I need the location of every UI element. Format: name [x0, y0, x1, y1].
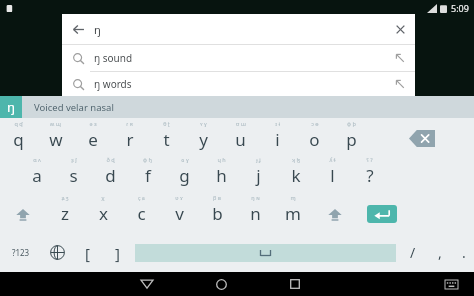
staticText: u: [235, 128, 246, 151]
staticText: y: [199, 128, 208, 151]
staticText: ə ɜ: [89, 120, 97, 127]
staticText: ]: [115, 243, 120, 263]
button[interactable]: ɪ ɨ: [259, 120, 296, 156]
button[interactable]: Switch keyboard: [434, 272, 468, 296]
button[interactable]: Space: [135, 244, 396, 262]
staticText: l: [330, 164, 335, 187]
button[interactable]: ɑ ʌ: [18, 156, 55, 194]
staticText: ɸ ɧ: [143, 156, 152, 163]
button[interactable]: ɸ ɧ: [129, 156, 166, 194]
staticText: o: [309, 128, 320, 151]
button[interactable]: Back: [130, 272, 164, 296]
staticText: ŋ ɴ: [251, 194, 260, 201]
staticText: q: [13, 128, 24, 151]
staticText: s: [69, 164, 78, 187]
button[interactable]: Shift: [312, 194, 358, 233]
button[interactable]: ʎ ɬ: [314, 156, 351, 194]
button[interactable]: ʕ ʔ: [351, 156, 388, 194]
staticText: ʊ ɯ: [236, 120, 246, 127]
button[interactable]: ð ɖ: [92, 156, 129, 194]
button[interactable]: ɔ ɵ: [296, 120, 333, 156]
button[interactable]: ɱ: [274, 194, 312, 233]
button[interactable]: Change language: [42, 233, 72, 272]
button[interactable]: Clear: [385, 14, 415, 44]
staticText: f: [145, 164, 151, 187]
button[interactable]: ]: [102, 233, 132, 272]
button[interactable]: Backspace: [370, 120, 474, 156]
staticText: 5:09: [451, 2, 469, 14]
staticText: ɸ þ: [347, 120, 356, 127]
staticText: ʑ ʒ: [61, 194, 69, 201]
staticText: ?: [366, 164, 374, 187]
staticText: ç ɕ: [138, 194, 145, 201]
staticText: ʎ ɬ: [329, 156, 336, 163]
button[interactable]: Recent apps: [278, 272, 312, 296]
button[interactable]: χ: [84, 194, 122, 233]
button[interactable]: ə ɜ: [74, 120, 111, 156]
staticText: ʕ ʔ: [366, 156, 373, 163]
button[interactable]: ?123: [0, 233, 42, 272]
staticText: ŋ words: [94, 77, 385, 91]
staticText: ʏ ɣ: [200, 120, 207, 127]
staticText: g: [179, 164, 190, 187]
button[interactable]: ç ɕ: [122, 194, 160, 233]
button[interactable]: ʂ ʃ: [55, 156, 92, 194]
staticText: ɟ ʝ: [256, 156, 261, 163]
button[interactable]: ,: [427, 233, 453, 272]
button[interactable]: ɋ ʠ: [0, 120, 37, 156]
staticText: d: [105, 164, 116, 187]
button[interactable]: ɾ ʀ: [111, 120, 148, 156]
staticText: ŋ: [7, 98, 16, 116]
button[interactable]: Back: [62, 14, 94, 44]
button[interactable]: ʑ ʒ: [46, 194, 84, 233]
button[interactable]: ʏ ɣ: [185, 120, 222, 156]
staticText: ɾ ʀ: [126, 120, 133, 127]
button[interactable]: ŋ words: [62, 72, 415, 96]
staticText: a: [32, 164, 42, 187]
staticText: z: [61, 202, 69, 225]
button[interactable]: Home: [204, 272, 238, 296]
staticText: v: [175, 202, 184, 225]
button[interactable]: [: [72, 233, 102, 272]
staticText: ɢ ɣ: [181, 156, 189, 163]
button[interactable]: ŋ ɴ: [236, 194, 274, 233]
button[interactable]: ɢ ɣ: [166, 156, 203, 194]
staticText: i: [275, 128, 280, 151]
button[interactable]: /: [399, 233, 427, 272]
button[interactable]: ɥ ɦ: [203, 156, 240, 194]
staticText: ʋ ɤ: [175, 194, 183, 201]
button[interactable]: β ʙ: [198, 194, 236, 233]
staticText: h: [216, 164, 227, 187]
staticText: ɑ ʌ: [33, 156, 41, 163]
staticText: j: [256, 164, 261, 187]
staticText: /: [410, 243, 416, 262]
staticText: c: [137, 202, 146, 225]
button[interactable]: ŋ sound: [62, 45, 415, 71]
button[interactable]: ɸ þ: [333, 120, 370, 156]
button[interactable]: ʍ ɰ: [37, 120, 74, 156]
staticText: ʍ ɰ: [50, 120, 61, 127]
button[interactable]: Enter: [358, 194, 406, 233]
staticText: ŋ: [94, 22, 385, 37]
staticText: r: [126, 128, 134, 151]
staticText: w: [49, 128, 63, 151]
button[interactable]: ʋ ɤ: [160, 194, 198, 233]
button[interactable]: ŋ: [0, 96, 474, 118]
button[interactable]: Shift: [0, 194, 46, 233]
button[interactable]: ʊ ɯ: [222, 120, 259, 156]
staticText: n: [250, 202, 261, 225]
button[interactable]: ʞ ɮ: [277, 156, 314, 194]
staticText: ŋ sound: [94, 51, 385, 65]
staticText: ɋ ʠ: [14, 120, 23, 127]
staticText: x: [99, 202, 108, 225]
button[interactable]: ɟ ʝ: [240, 156, 277, 194]
staticText: Voiced velar nasal: [34, 101, 114, 114]
staticText: θ ʈ: [163, 120, 170, 127]
staticText: ɱ: [290, 194, 296, 201]
staticText: t: [163, 128, 170, 151]
staticText: m: [285, 202, 301, 225]
button[interactable]: θ ʈ: [148, 120, 185, 156]
staticText: ʂ ʃ: [71, 156, 77, 163]
button[interactable]: .: [453, 233, 474, 272]
staticText: ð ɖ: [106, 156, 115, 163]
